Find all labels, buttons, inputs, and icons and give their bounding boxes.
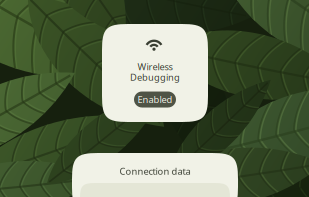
button[interactable]: Wireless [102,24,208,122]
staticText: Connection data [119,165,190,177]
staticText: Enabled [137,93,172,106]
staticText: Debugging [130,71,180,83]
button[interactable]: Connection data [72,153,238,197]
staticText: Wireless [137,60,172,73]
